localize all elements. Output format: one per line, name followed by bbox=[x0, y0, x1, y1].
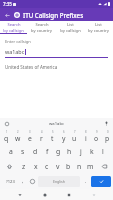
staticText: by country bbox=[88, 28, 109, 34]
staticText: s bbox=[21, 147, 25, 156]
staticText: 6 bbox=[63, 130, 65, 134]
staticText: z bbox=[22, 162, 26, 171]
staticText: 8 bbox=[85, 130, 87, 134]
staticText: o bbox=[94, 134, 99, 143]
button[interactable]: 8 bbox=[80, 129, 91, 144]
button[interactable]: English bbox=[38, 176, 80, 187]
button[interactable]: d bbox=[29, 144, 41, 159]
staticText: 4 bbox=[41, 130, 43, 134]
staticText: v bbox=[56, 162, 60, 171]
staticText: List bbox=[67, 22, 74, 28]
button[interactable]: Expand suggestions bbox=[3, 120, 10, 127]
button[interactable]: 0 bbox=[102, 129, 113, 144]
button[interactable]: x bbox=[30, 159, 41, 174]
button[interactable]: List bbox=[84, 21, 113, 34]
button[interactable]: 9 bbox=[91, 129, 102, 144]
button[interactable]: Period bbox=[81, 176, 90, 187]
button[interactable]: v bbox=[52, 159, 63, 174]
button[interactable]: 4 bbox=[36, 129, 47, 144]
button[interactable]: k bbox=[86, 144, 97, 159]
button[interactable]: Home bbox=[39, 189, 50, 200]
staticText: . bbox=[85, 178, 87, 185]
staticText: q bbox=[4, 134, 9, 143]
button[interactable]: c bbox=[41, 159, 52, 174]
button[interactable]: n bbox=[74, 159, 85, 174]
staticText: r bbox=[40, 134, 43, 143]
button[interactable]: f bbox=[41, 144, 53, 159]
staticText: 1 bbox=[6, 130, 8, 134]
staticText: List bbox=[95, 22, 102, 28]
staticText: , bbox=[22, 178, 24, 185]
staticText: 0 bbox=[107, 130, 109, 134]
staticText: h bbox=[67, 147, 72, 156]
button[interactable]: Hide keyboard bbox=[88, 189, 99, 200]
button[interactable]: s bbox=[17, 144, 29, 159]
staticText: j bbox=[80, 147, 82, 156]
staticText: a bbox=[9, 147, 13, 156]
button[interactable]: g bbox=[53, 144, 64, 159]
button[interactable]: 2 bbox=[12, 129, 24, 144]
button[interactable]: z bbox=[18, 159, 30, 174]
button[interactable]: 3 bbox=[24, 129, 36, 144]
button[interactable]: Search bbox=[0, 21, 27, 34]
button[interactable]: List bbox=[56, 21, 84, 34]
staticText: wa1abc bbox=[49, 121, 64, 127]
staticText: p bbox=[105, 134, 110, 143]
button[interactable]: Recent apps bbox=[63, 189, 74, 200]
staticText: Search bbox=[35, 22, 49, 28]
button[interactable]: m bbox=[85, 159, 96, 174]
staticText: l bbox=[102, 147, 104, 156]
staticText: ITU Callsign Prefixes bbox=[23, 11, 84, 19]
staticText: wa1abc bbox=[5, 48, 25, 55]
button[interactable]: b bbox=[63, 159, 74, 174]
button[interactable]: Back bbox=[14, 189, 25, 200]
button[interactable]: Emoji bbox=[27, 176, 37, 187]
staticText: 9 bbox=[96, 130, 98, 134]
button[interactable]: h bbox=[64, 144, 75, 159]
staticText: m bbox=[87, 162, 94, 171]
staticText: n bbox=[77, 162, 82, 171]
staticText: ?123 bbox=[6, 179, 15, 185]
button[interactable]: Search bbox=[91, 176, 111, 187]
staticText: 3 bbox=[29, 130, 31, 134]
staticText: e bbox=[28, 134, 32, 143]
staticText: d bbox=[33, 147, 38, 156]
staticText: g bbox=[56, 147, 61, 156]
staticText: Enter callsign bbox=[5, 39, 31, 45]
staticText: 5 bbox=[52, 130, 54, 134]
staticText: u bbox=[72, 134, 77, 143]
staticText: by callsign bbox=[60, 28, 81, 34]
staticText: x bbox=[34, 162, 38, 171]
staticText: w bbox=[15, 134, 21, 143]
staticText: b bbox=[66, 162, 71, 171]
staticText: English bbox=[53, 179, 65, 184]
staticText: United States of America bbox=[5, 64, 58, 70]
staticText: 7:35 bbox=[3, 1, 12, 7]
staticText: y bbox=[62, 134, 66, 143]
button[interactable]: 6 bbox=[58, 129, 69, 144]
staticText: c bbox=[45, 162, 49, 171]
staticText: Search bbox=[7, 22, 21, 28]
button[interactable]: Comma bbox=[18, 176, 27, 187]
staticText: 2 bbox=[17, 130, 19, 134]
staticText: by callsign bbox=[3, 28, 24, 34]
button[interactable]: Search bbox=[27, 21, 56, 34]
staticText: f bbox=[46, 147, 49, 156]
staticText: k bbox=[90, 147, 94, 156]
staticText: by country bbox=[31, 28, 52, 34]
button[interactable]: a bbox=[5, 144, 17, 159]
button[interactable]: 5 bbox=[47, 129, 58, 144]
button[interactable]: l bbox=[97, 144, 108, 159]
staticText: 7 bbox=[74, 130, 76, 134]
button[interactable]: Back bbox=[2, 10, 12, 20]
button[interactable]: Shift bbox=[1, 159, 18, 174]
staticText: t bbox=[51, 134, 54, 143]
button[interactable]: j bbox=[75, 144, 86, 159]
button[interactable]: Voice input bbox=[103, 120, 110, 127]
button[interactable]: 1 bbox=[0, 129, 12, 144]
staticText: i bbox=[85, 134, 87, 143]
button[interactable]: ?123 bbox=[2, 176, 18, 187]
button[interactable]: Backspace bbox=[96, 159, 112, 174]
button[interactable]: 7 bbox=[69, 129, 80, 144]
